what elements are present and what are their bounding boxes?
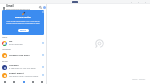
button[interactable]: Window control <box>144 1 146 3</box>
staticText: Your Gmail inbox keeps your mail tidy by… <box>6 20 40 24</box>
button[interactable]: Me <box>0 39 47 47</box>
button[interactable]: Menu <box>1 5 6 10</box>
button[interactable]: Browser tab <box>72 1 78 3</box>
button[interactable]: GOT IT <box>18 29 29 32</box>
button[interactable]: Mail <box>1 79 9 84</box>
staticText: Yesterday <box>2 48 11 51</box>
staticText: Draft message <box>9 43 23 46</box>
button[interactable]: LinkedIn <box>0 63 47 71</box>
staticText: Me <box>9 40 13 43</box>
button[interactable]: Reply <box>41 65 45 69</box>
button[interactable]: Meet <box>29 79 37 84</box>
staticText: Terms · Privacy <box>132 78 146 81</box>
button[interactable]: Reply <box>41 41 45 45</box>
staticText: Amazon.com order <box>9 54 30 57</box>
button[interactable]: Search <box>38 5 42 9</box>
button[interactable]: Reply <box>41 53 45 57</box>
button[interactable]: Window control <box>130 1 132 3</box>
staticText: Today <box>2 36 8 39</box>
staticText: LinkedIn <box>9 64 19 67</box>
staticText: Reddit Digest <box>9 72 24 75</box>
staticText: Earlier <box>2 60 8 63</box>
button[interactable]: Account <box>42 5 46 9</box>
button[interactable]: Reddit Digest <box>0 71 47 79</box>
button[interactable]: Spaces <box>20 79 28 84</box>
staticText: 5 new jobs for you this week <box>9 67 36 70</box>
button[interactable]: Window control <box>137 1 139 3</box>
button[interactable]: Dismiss <box>2 10 44 35</box>
staticText: Top posts from r/android today <box>9 75 39 78</box>
staticText: Reduce clutter <box>15 16 31 19</box>
staticText: user.name@example.com <box>6 8 31 10</box>
button[interactable]: More <box>38 79 46 84</box>
button[interactable]: Amazon.com order <box>0 51 47 59</box>
button[interactable]: Chat <box>10 79 18 84</box>
staticText: Gmail <box>6 4 14 8</box>
button[interactable]: Dismiss <box>41 10 44 13</box>
button[interactable]: Reply <box>41 73 45 77</box>
staticText: GOT IT <box>20 29 27 32</box>
